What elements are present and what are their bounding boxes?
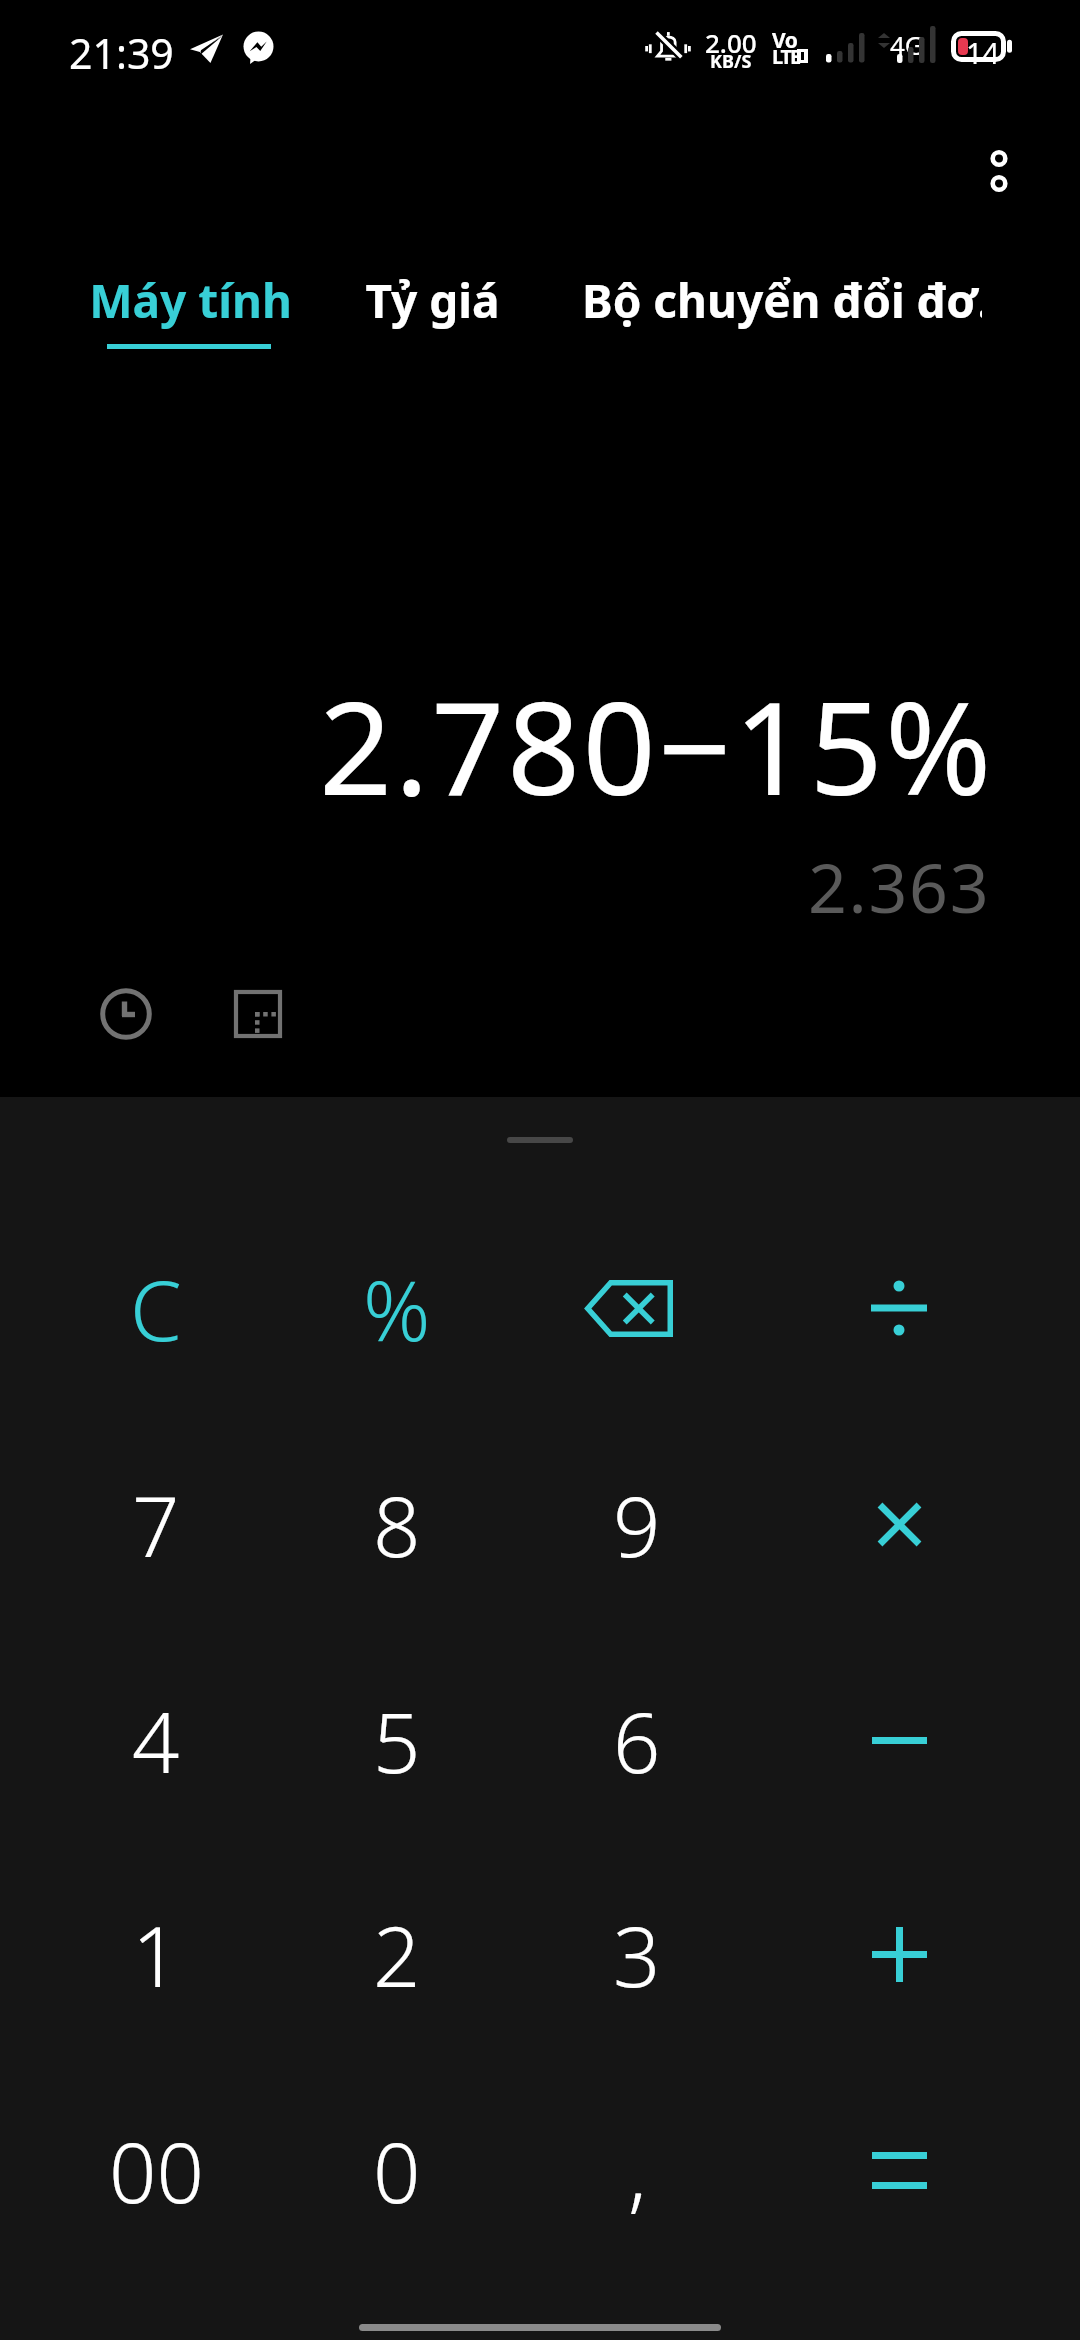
button[interactable]: 6: [517, 1640, 757, 1840]
staticText: Máy tính: [89, 269, 289, 332]
staticText: 2: [373, 1898, 421, 2011]
staticText: 2.780−15%: [319, 658, 994, 832]
staticText: Bộ chuyển đổi đơ…: [582, 269, 982, 332]
button[interactable]: Equals: [779, 2070, 1019, 2270]
button[interactable]: 1: [36, 1854, 276, 2054]
button[interactable]: Plus: [779, 1854, 1019, 2054]
button[interactable]: Tỷ giá: [332, 238, 532, 353]
button[interactable]: 7: [36, 1424, 276, 1624]
button[interactable]: More options: [959, 131, 1039, 211]
staticText: 7: [132, 1468, 180, 1581]
staticText: 00: [109, 2114, 204, 2227]
button[interactable]: Toggle keypad: [226, 982, 290, 1046]
button[interactable]: Backspace: [517, 1208, 757, 1408]
button[interactable]: 4: [36, 1640, 276, 1840]
staticText: 2.363: [808, 840, 991, 933]
button[interactable]: Minus: [779, 1640, 1019, 1840]
button[interactable]: Bộ chuyển đổi đơ…: [582, 238, 982, 353]
button[interactable]: 0: [277, 2070, 517, 2270]
staticText: 21:39: [69, 25, 174, 81]
staticText: 4G: [890, 27, 924, 62]
button[interactable]: 3: [517, 1854, 757, 2054]
staticText: ,: [628, 2114, 647, 2227]
button[interactable]: Multiply: [779, 1424, 1019, 1624]
staticText: Vo: [772, 26, 798, 55]
button[interactable]: 8: [277, 1424, 517, 1624]
button[interactable]: History: [86, 974, 166, 1054]
staticText: 4: [132, 1684, 180, 1797]
button[interactable]: %: [277, 1208, 517, 1408]
button[interactable]: ,: [517, 2070, 757, 2270]
staticText: 1: [132, 1898, 180, 2011]
button[interactable]: C: [36, 1208, 276, 1408]
staticText: 3: [613, 1898, 661, 2011]
button[interactable]: 9: [517, 1424, 757, 1624]
staticText: KB/S: [710, 49, 752, 74]
staticText: 8: [373, 1468, 421, 1581]
staticText: 2.00: [705, 25, 757, 60]
staticText: Tỷ giá: [365, 269, 500, 332]
staticText: %: [363, 1252, 431, 1365]
button[interactable]: Divide: [779, 1208, 1019, 1408]
staticText: 5: [373, 1684, 421, 1797]
button[interactable]: 2: [277, 1854, 517, 2054]
staticText: 6: [613, 1684, 661, 1797]
staticText: 9: [613, 1468, 661, 1581]
staticText: 0: [373, 2114, 421, 2227]
staticText: 14: [966, 33, 1000, 72]
staticText: C: [130, 1252, 182, 1365]
button[interactable]: 00: [36, 2070, 276, 2270]
staticText: LTE: [772, 43, 799, 70]
button[interactable]: Máy tính: [89, 238, 289, 353]
button[interactable]: 5: [277, 1640, 517, 1840]
